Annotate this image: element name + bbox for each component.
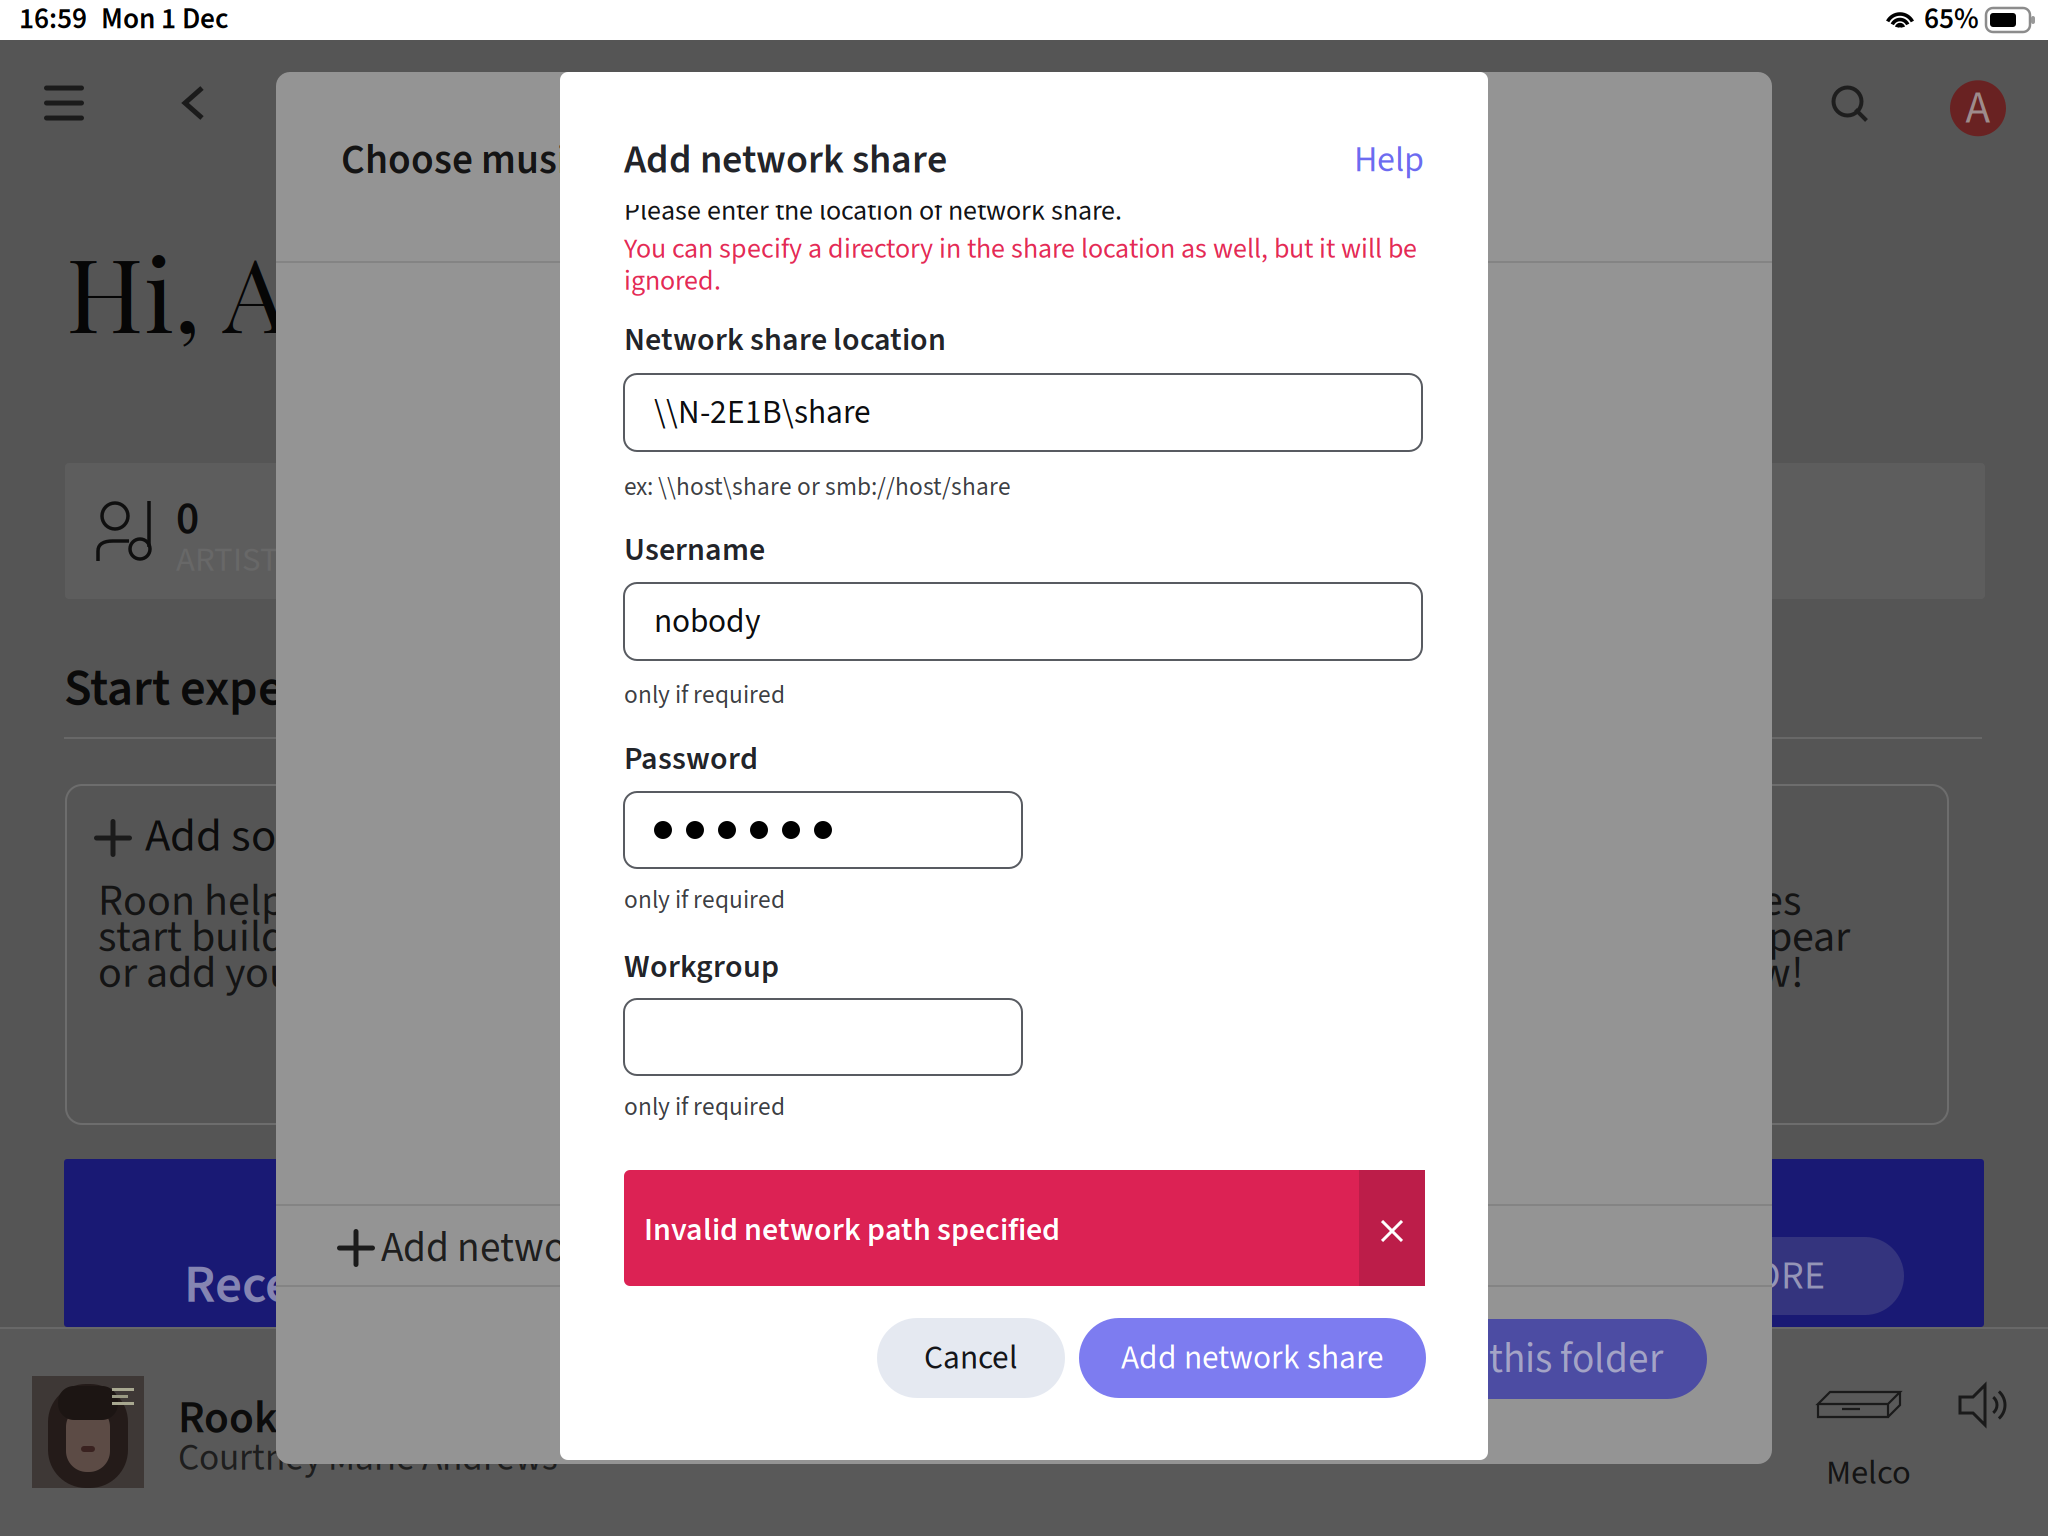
button[interactable]: Add network share [1079,1318,1426,1398]
staticText: Add network share [624,131,947,188]
staticText: Mon 1 Dec [101,0,229,40]
staticText: Cancel [924,1334,1018,1382]
staticText: only if required [624,677,785,713]
button[interactable]: Back [182,86,204,120]
staticText: TRACKS [1106,535,1222,585]
staticText: Select this folder [1374,1330,1663,1388]
staticText: Choose music folder [341,131,701,189]
staticText: Melco [1826,1448,1911,1498]
staticText: Recent activity [184,1247,522,1323]
staticText: start building your library by importing… [98,906,1850,968]
button[interactable]: Menu [44,86,84,120]
staticText: ALBUMS [626,535,748,585]
staticText: ignored. [624,261,721,301]
staticText: 16:59 [19,0,87,40]
staticText: Add network share [1121,1334,1384,1382]
button[interactable]: Cancel [877,1318,1065,1398]
staticText: A [1965,76,1990,141]
staticText: Network share location [624,317,946,363]
button[interactable]: Account [1950,76,2006,141]
staticText: only if required [624,882,785,918]
staticText: ARTISTS [176,535,296,585]
staticText: Please enter the location of network sha… [624,191,1122,231]
staticText: Help [1354,134,1424,186]
staticText: 0 [626,487,649,551]
staticText: Rookie [178,1386,313,1450]
button[interactable]: Search [1834,88,1868,122]
staticText: only if required [624,1089,785,1125]
staticText: Add network share [381,1219,703,1277]
staticText: Password [624,736,758,782]
staticText: nobody [654,598,761,645]
staticText: Hi, Alex [66,222,420,359]
staticText: MORE [1725,1247,1825,1304]
staticText: Start experiencing Roon [64,653,583,725]
staticText: 65% [1924,0,1979,40]
staticText: or add your local music files right here… [98,942,1804,1004]
staticText: \\N-2E1B\share [654,389,871,436]
staticText: 3:27 [1394,1414,1460,1468]
staticText: Courtney Marie Andrews [178,1431,558,1485]
staticText: 0 [176,487,199,551]
staticText: Roon helps you explore and discover all … [98,870,1801,932]
button[interactable]: Dismiss error [1381,1220,1403,1242]
staticText: Add some music [145,803,463,869]
button[interactable]: MORE [1646,1237,1904,1315]
staticText: 2:58 [603,1414,669,1468]
staticText: You can specify a directory in the share… [624,229,1417,269]
button[interactable]: Help [1290,134,1424,186]
staticText: Invalid network path specified [644,1207,1060,1253]
staticText: ex: \\host\share or smb://host/share [624,469,1011,505]
staticText: Username [624,527,765,573]
staticText: Workgroup [624,944,779,990]
